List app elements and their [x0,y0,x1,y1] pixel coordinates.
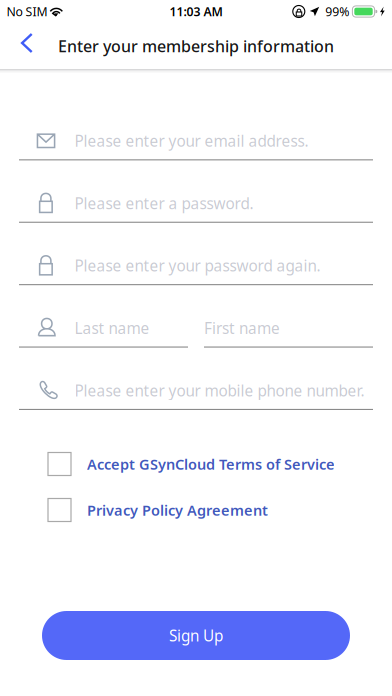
staticText: Accept GSynCloud Terms of Service [87,454,335,474]
staticText: Enter your membership information [58,35,334,57]
button[interactable]: Back [0,25,45,67]
staticText: Please enter your mobile phone number. [74,380,364,401]
staticText: 11:03 AM [169,3,222,20]
button[interactable]: Privacy Policy Agreement [0,487,392,533]
button[interactable]: Accept GSynCloud Terms of Service [0,441,392,487]
staticText: Last name [74,318,149,338]
staticText: Please enter your password again. [74,255,320,276]
staticText: First name [204,318,280,338]
staticText: 99% [325,3,349,20]
staticText: Please enter a password. [74,193,253,214]
staticText: Privacy Policy Agreement [87,500,268,520]
staticText: Please enter your email address. [74,130,308,151]
staticText: No SIM [6,3,47,20]
button[interactable]: Sign Up [42,611,350,660]
staticText: Sign Up [169,625,223,646]
